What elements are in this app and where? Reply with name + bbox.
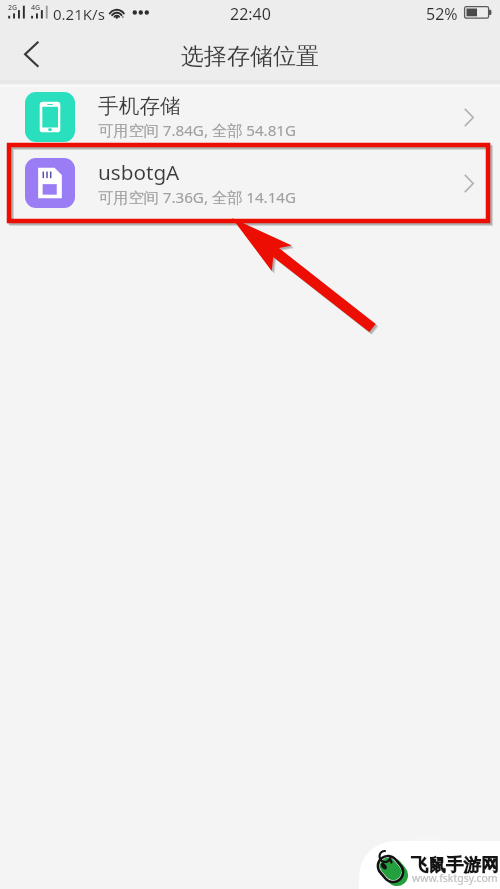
staticText: 22:40 — [230, 3, 271, 25]
staticText: 4G — [31, 3, 41, 13]
staticText: 52% — [426, 3, 458, 25]
button[interactable]: usbotgA — [0, 150, 500, 216]
staticText: 2G — [8, 3, 18, 13]
staticText: 手机存储 — [98, 93, 181, 119]
staticText: 飞鼠手游网 — [411, 854, 499, 876]
staticText: 0.21K/s — [53, 4, 105, 24]
staticText: 可用空间 7.36G, 全部 14.14G — [98, 187, 297, 208]
button[interactable]: Back — [0, 28, 52, 80]
button[interactable]: 手机存储 — [0, 84, 500, 150]
staticText: www.fsktgsy.com — [412, 871, 498, 885]
staticText: 选择存储位置 — [181, 42, 319, 71]
staticText: 可用空间 7.84G, 全部 54.81G — [98, 120, 297, 141]
staticText: usbotgA — [98, 158, 180, 186]
